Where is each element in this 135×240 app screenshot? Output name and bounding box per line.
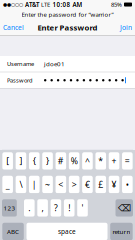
- staticText: Username: [7, 60, 34, 68]
- staticText: Enter the password for “warrior”: [21, 10, 113, 19]
- staticText: {: [33, 155, 36, 167]
- button[interactable]: |: [29, 176, 40, 193]
- button[interactable]: ⌫: [115, 199, 133, 217]
- staticText: £: [98, 179, 103, 190]
- button[interactable]: space: [26, 223, 107, 240]
- button[interactable]: ': [77, 199, 88, 217]
- button[interactable]: [: [2, 152, 13, 170]
- staticText: =: [125, 155, 130, 167]
- button[interactable]: €: [82, 176, 93, 193]
- staticText: #: [58, 155, 64, 167]
- staticText: jdoe01: [44, 60, 65, 68]
- button[interactable]: !: [64, 199, 74, 217]
- staticText: .: [28, 202, 30, 214]
- button[interactable]: •: [122, 176, 133, 193]
- button[interactable]: £: [95, 176, 106, 193]
- button[interactable]: +: [109, 152, 119, 170]
- button[interactable]: >: [69, 176, 79, 193]
- button[interactable]: Join: [117, 20, 135, 35]
- staticText: space: [58, 227, 76, 236]
- staticText: _: [6, 179, 10, 190]
- button[interactable]: ABC: [2, 223, 24, 240]
- button[interactable]: ,: [37, 199, 48, 217]
- staticText: 85%: [111, 0, 124, 8]
- staticText: Join: [120, 23, 132, 32]
- staticText: [: [6, 155, 9, 167]
- staticText: ~: [45, 179, 50, 190]
- staticText: ?: [54, 202, 58, 214]
- button[interactable]: Cancel: [0, 20, 27, 35]
- staticText: %: [71, 155, 78, 167]
- button[interactable]: *: [95, 152, 106, 170]
- staticText: >: [72, 179, 77, 190]
- staticText: LTE: [39, 0, 50, 8]
- staticText: ^: [85, 155, 90, 167]
- button[interactable]: ?: [51, 199, 61, 217]
- staticText: 123: [3, 204, 15, 212]
- staticText: ]: [19, 155, 22, 167]
- staticText: \: [19, 179, 22, 190]
- staticText: Enter Password: [37, 22, 97, 33]
- staticText: }: [46, 155, 49, 167]
- staticText: |: [32, 179, 37, 190]
- staticText: !: [68, 202, 70, 214]
- staticText: Cancel: [3, 23, 24, 32]
- staticText: ABC: [7, 227, 19, 236]
- staticText: return: [112, 227, 130, 236]
- button[interactable]: }: [42, 152, 53, 170]
- staticText: €: [85, 179, 90, 190]
- button[interactable]: ¥: [109, 176, 119, 193]
- button[interactable]: .: [24, 199, 35, 217]
- button[interactable]: \: [16, 176, 26, 193]
- button[interactable]: ]: [16, 152, 26, 170]
- button[interactable]: =: [122, 152, 133, 170]
- button[interactable]: ^: [82, 152, 93, 170]
- button[interactable]: <: [56, 176, 66, 193]
- staticText: 10:08 AM: [52, 0, 82, 9]
- staticText: ●●○○○: [3, 2, 23, 7]
- button[interactable]: return: [110, 223, 133, 240]
- button[interactable]: 123: [2, 199, 17, 217]
- staticText: *: [98, 155, 103, 167]
- staticText: ,: [42, 202, 44, 214]
- staticText: AT&T: [23, 0, 39, 9]
- staticText: ': [81, 202, 83, 214]
- staticText: •: [126, 179, 129, 190]
- staticText: Password: [7, 76, 33, 84]
- staticText: ⌫: [118, 203, 131, 213]
- staticText: <: [58, 179, 63, 190]
- staticText: +: [112, 155, 117, 167]
- button[interactable]: #: [56, 152, 66, 170]
- button[interactable]: {: [29, 152, 40, 170]
- button[interactable]: %: [69, 152, 79, 170]
- button[interactable]: ~: [42, 176, 53, 193]
- button[interactable]: _: [2, 176, 13, 193]
- staticText: ¥: [112, 179, 117, 190]
